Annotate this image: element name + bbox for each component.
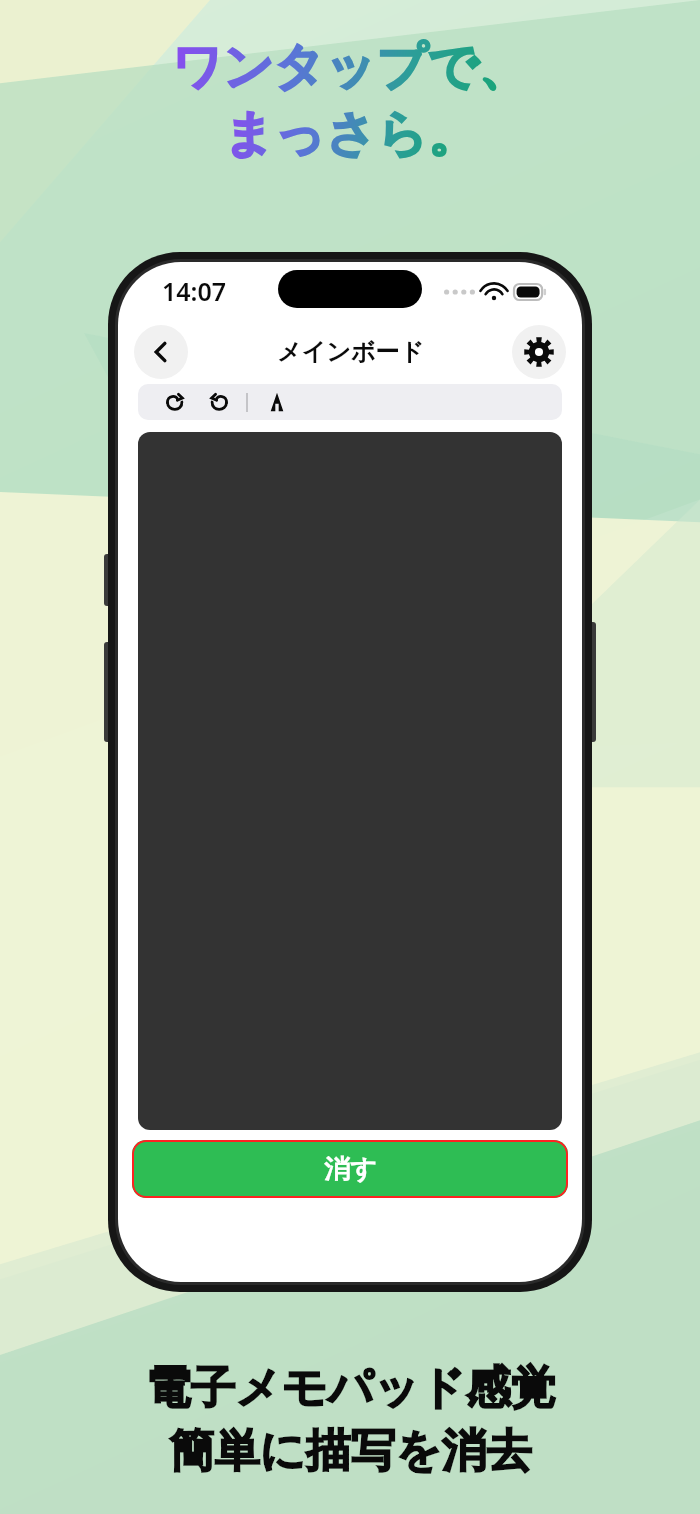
staticText: 14:07 <box>162 274 227 308</box>
button[interactable]: Settings <box>512 325 566 379</box>
button[interactable]: Pen <box>262 387 292 417</box>
staticText: ワンタップで、 <box>171 36 529 99</box>
staticText: 電子メモパッド感覚 <box>145 1360 556 1417</box>
button[interactable]: Back <box>134 325 188 379</box>
button[interactable]: Redo <box>204 387 234 417</box>
button[interactable]: 消す <box>132 1140 568 1198</box>
button[interactable]: Undo <box>160 387 190 417</box>
button[interactable]: Drawing board <box>138 432 562 1130</box>
staticText: まっさら。 <box>223 103 478 166</box>
staticText: メインボード <box>277 337 424 367</box>
staticText: 簡単に描写を消去 <box>169 1423 532 1480</box>
staticText: 消す <box>324 1153 377 1186</box>
